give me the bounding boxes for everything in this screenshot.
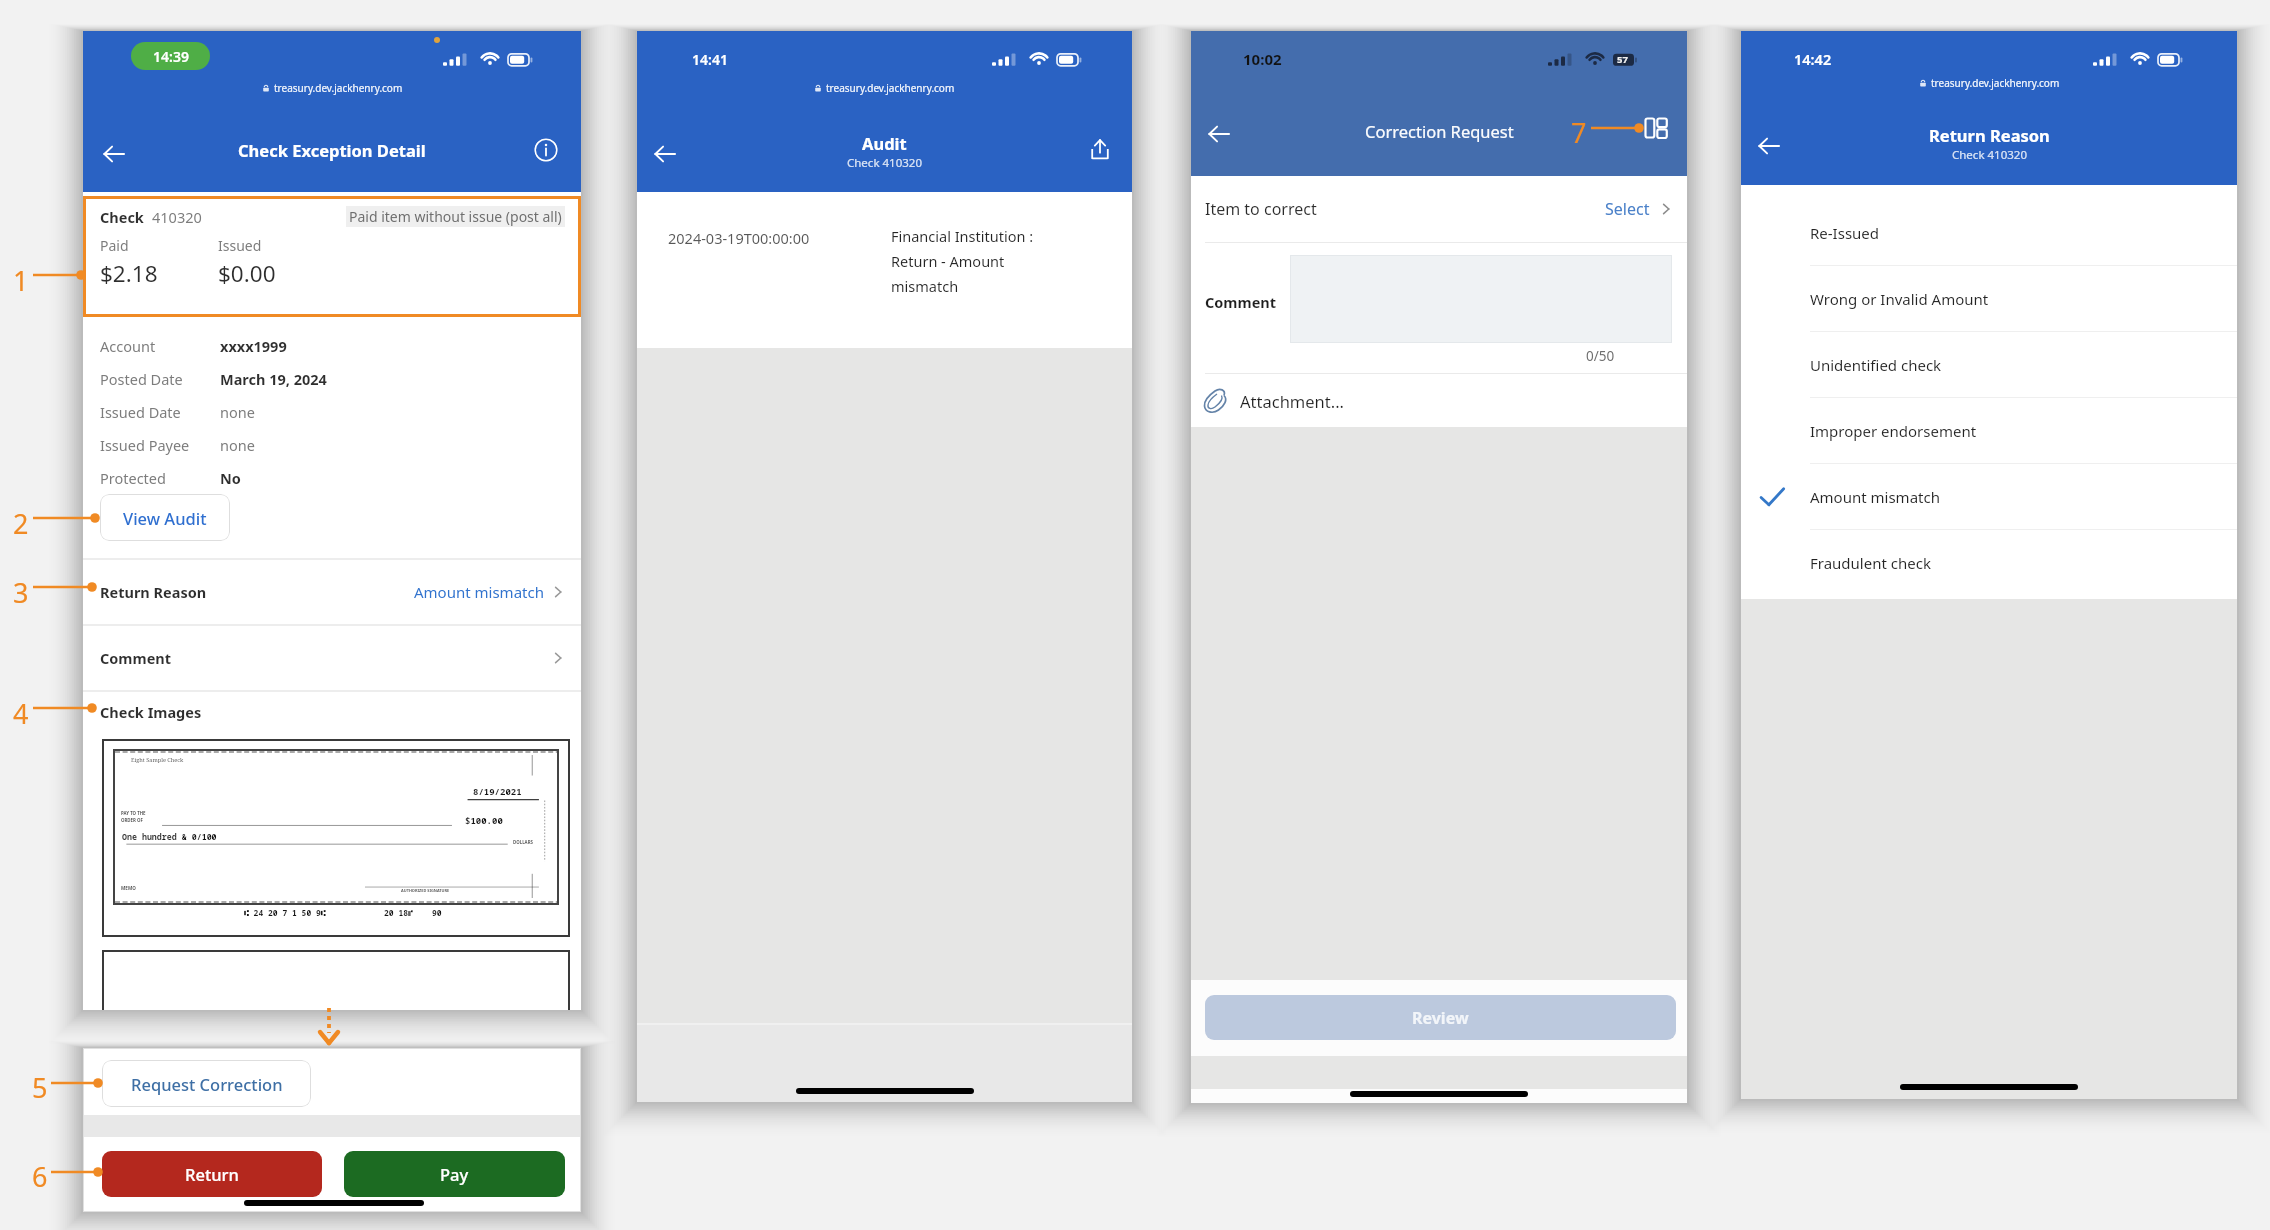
staticText: Check 410320 [1952,147,2027,163]
button[interactable]: Return [102,1151,322,1197]
staticText: Eight Sample Check [131,756,184,764]
staticText: xxxx1999 [220,336,287,356]
staticText: 5 [32,1069,48,1106]
staticText: treasury.dev.jackhenry.com [1931,76,2060,90]
button[interactable]: Wrong or Invalid Amount [1741,266,2237,331]
staticText: Improper endorsement [1810,421,1977,441]
button[interactable]: Split view [1645,118,1667,138]
staticText: treasury.dev.jackhenry.com [274,81,403,95]
staticText: Issued [218,236,262,255]
staticText: Paid item without issue (post all) [349,207,562,226]
staticText: No [220,468,241,488]
staticText: March 19, 2024 [220,369,327,389]
button[interactable]: Return Reason [83,559,581,624]
staticText: Return Reason [1929,124,2050,146]
staticText: 3 [13,574,29,611]
staticText: 2024-03-19T00:00:00 [668,228,810,248]
staticText: 4 [13,695,29,732]
staticText: Audit [862,132,907,154]
staticText: Re-Issued [1810,223,1880,243]
staticText: Amount mismatch [1810,487,1940,507]
button[interactable]: Review [1205,995,1676,1040]
staticText: ⑆ 24 20 7 1 50 9⑆ [244,907,326,918]
staticText: Posted Date [100,369,220,389]
staticText: PAY TO THE [121,810,146,816]
staticText: 10:02 [1243,49,1282,69]
staticText: 2 [13,505,29,542]
staticText: Return Reason [100,582,207,602]
staticText: 7 [1571,114,1587,151]
staticText: Issued Payee [100,435,220,455]
staticText: Check Exception Detail [238,139,426,161]
button[interactable]: Item to correct [1191,176,1687,242]
button[interactable]: Info [534,138,558,162]
staticText: AUTHORIZED SIGNATURE [401,888,450,893]
button[interactable]: Comment [83,625,581,690]
staticText: Attachment... [1240,390,1344,412]
staticText: Select [1605,198,1650,220]
staticText: Check Images [100,702,202,722]
staticText: $2.18 [100,258,158,289]
staticText: Check [100,207,144,227]
staticText: Check 410320 [847,155,922,171]
staticText: 410320 [152,207,202,227]
staticText: Review [1412,1007,1469,1029]
button[interactable]: Fraudulent check [1741,530,2237,595]
staticText: 20 18⑈ 90 [384,907,442,918]
staticText: 14:42 [1794,49,1832,69]
staticText: 8/19/2021 [473,785,522,797]
staticText: Request Correction [131,1073,283,1095]
staticText: 57 [1617,53,1628,66]
button[interactable]: Amount mismatch [1741,464,2237,529]
staticText: Issued Date [100,402,220,422]
staticText: Paid [100,236,129,255]
staticText: Fraudulent check [1810,553,1931,573]
staticText: Account [100,336,220,356]
button[interactable]: Request Correction [102,1060,311,1107]
button[interactable]: Unidentified check [1741,332,2237,397]
button[interactable]: Improper endorsement [1741,398,2237,463]
staticText: 1 [13,262,29,299]
staticText: 0/50 [1586,347,1615,365]
staticText: MEMO [121,885,136,891]
staticText: Unidentified check [1810,355,1942,375]
button[interactable]: Back [1753,130,1785,162]
staticText: Protected [100,468,220,488]
staticText: treasury.dev.jackhenry.com [826,81,955,95]
staticText: $0.00 [218,258,276,289]
staticText: Comment [100,648,172,668]
staticText: Item to correct [1205,198,1317,220]
button[interactable]: Back [98,138,130,170]
staticText: Correction Request [1365,120,1514,142]
staticText: Wrong or Invalid Amount [1810,289,1989,309]
staticText: DOLLARS [513,839,533,845]
staticText: One hundred & 0/100 [122,831,217,842]
button[interactable]: Re-Issued [1741,200,2237,265]
staticText: Financial Institution : Return - Amount … [891,226,1071,296]
staticText: Amount mismatch [414,582,544,602]
button[interactable]: Share [1087,136,1113,162]
staticText: 14:41 [692,50,728,69]
button[interactable]: Back [1203,118,1235,150]
button[interactable]: Attachment... [1191,374,1687,427]
button[interactable]: View Audit [100,494,230,541]
staticText: ORDER OF [121,817,143,823]
staticText: 6 [32,1158,48,1195]
staticText: 14:39 [153,47,189,66]
staticText: none [220,402,255,422]
staticText: Pay [440,1163,469,1185]
staticText: none [220,435,255,455]
button[interactable]: Back [649,138,681,170]
staticText: $100.00 [465,814,503,826]
button[interactable]: Pay [344,1151,565,1197]
staticText: Comment [1205,292,1277,312]
staticText: View Audit [123,507,207,529]
staticText: Return [185,1163,239,1185]
